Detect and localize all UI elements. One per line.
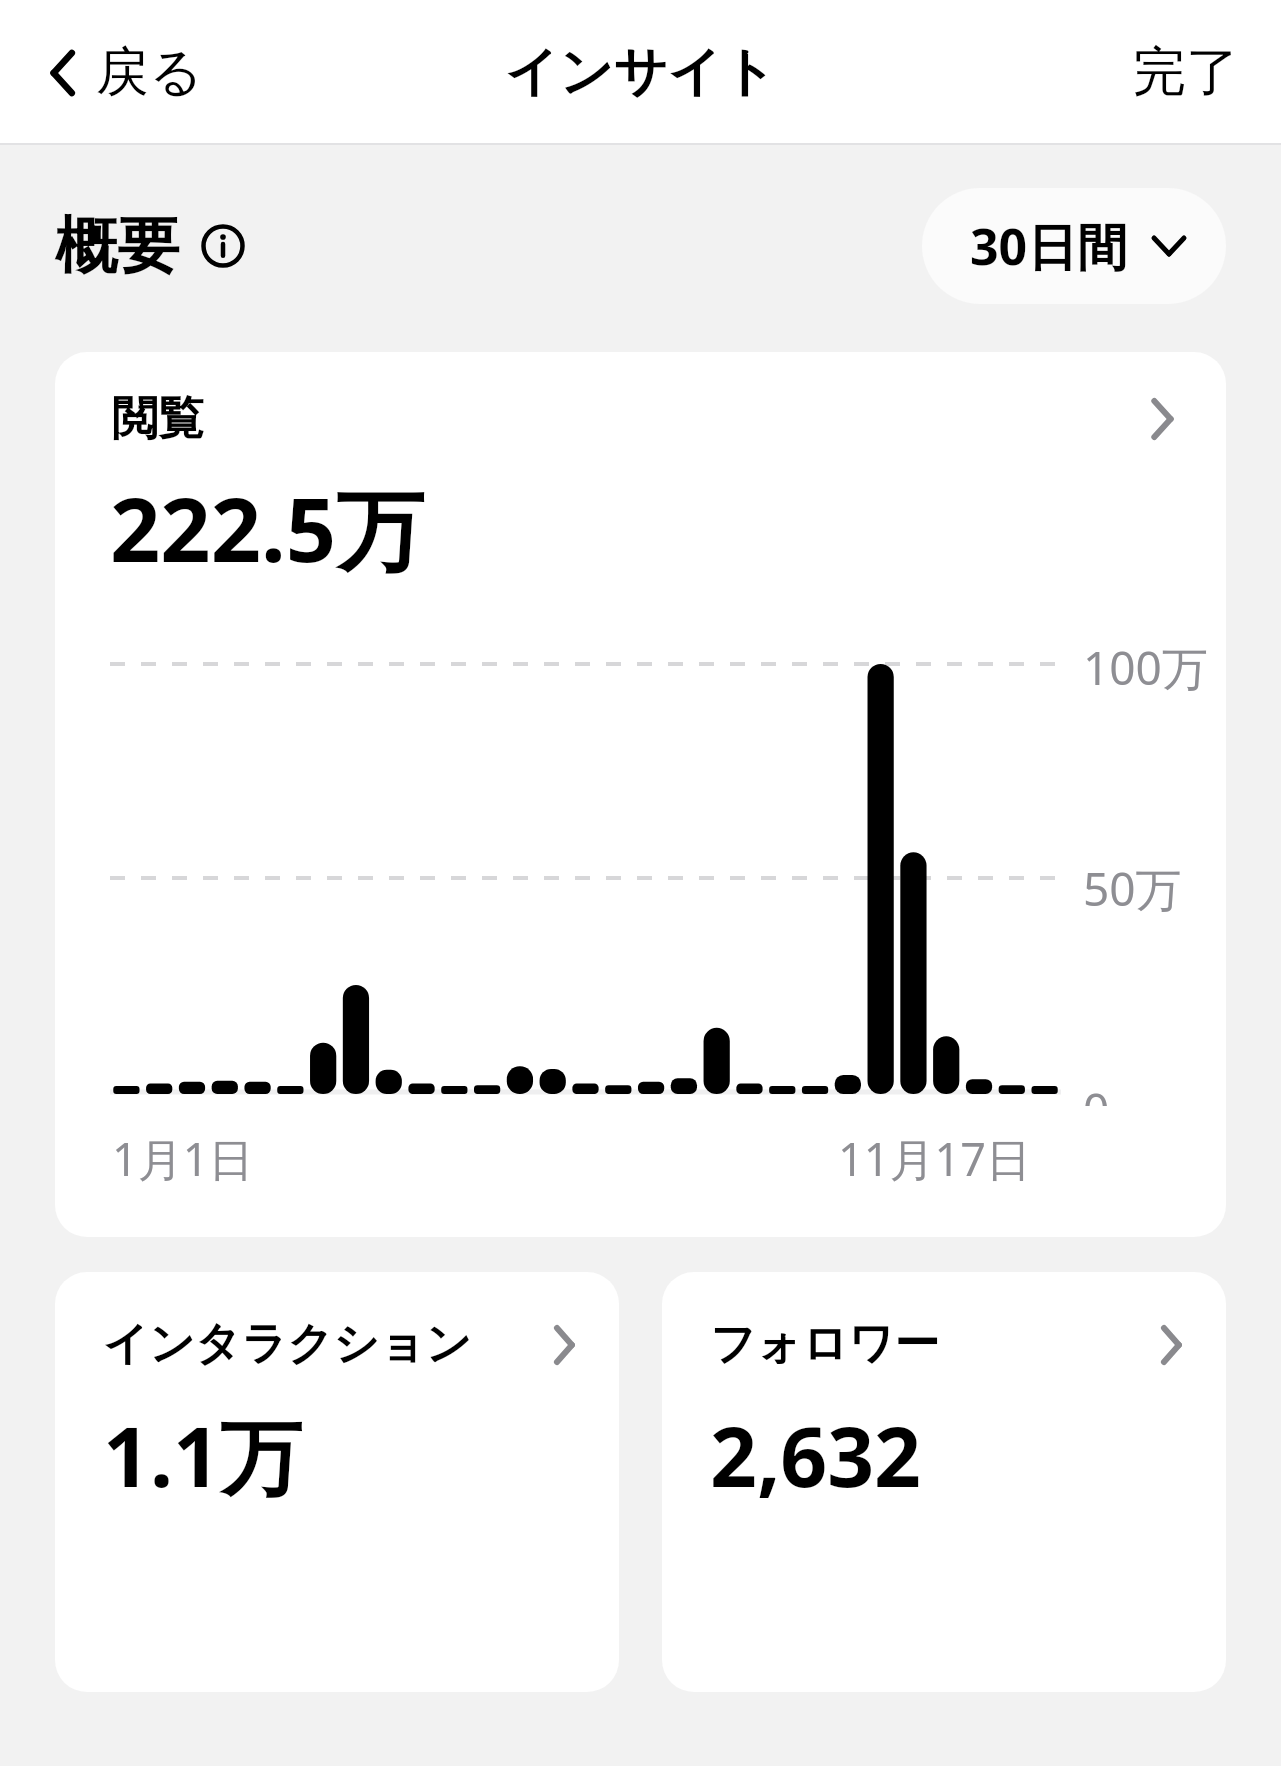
button[interactable]: フォロワー — [662, 1272, 1226, 1692]
button[interactable]: 詳細情報 — [199, 222, 247, 270]
staticText: 0 — [1083, 1078, 1110, 1106]
staticText: 11月17日 — [838, 1128, 1031, 1189]
button[interactable]: 閲覧 — [55, 352, 1226, 1237]
button[interactable]: インタラクション — [55, 1272, 619, 1692]
staticText: 閲覧 — [112, 390, 204, 448]
staticText: フォロワー — [710, 1316, 940, 1373]
staticText: 30日間 — [970, 212, 1128, 280]
staticText: 50万 — [1083, 857, 1182, 915]
button[interactable]: 完了 — [1119, 19, 1253, 126]
staticText: 2,632 — [710, 1399, 921, 1511]
staticText: 戻る — [96, 39, 204, 106]
staticText: 222.5万 — [110, 468, 425, 588]
button[interactable]: 戻る — [38, 19, 216, 126]
staticText: 1月1日 — [112, 1128, 254, 1189]
staticText: 概要 — [55, 207, 179, 285]
staticText: インタラクション — [103, 1316, 472, 1373]
staticText: インサイト — [505, 39, 777, 106]
staticText: 1.1万 — [103, 1399, 302, 1511]
staticText: 完了 — [1133, 39, 1239, 106]
button[interactable]: 30日間 — [922, 188, 1226, 304]
staticText: 100万 — [1083, 636, 1208, 694]
